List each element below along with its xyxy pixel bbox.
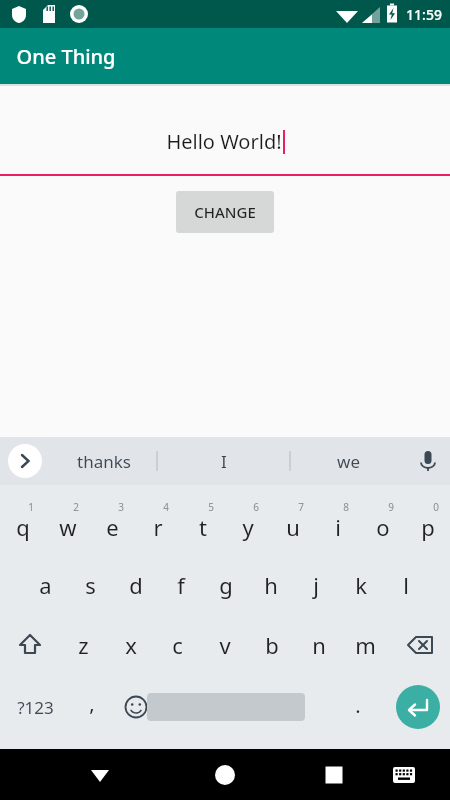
button[interactable]: ?123 [4, 675, 66, 739]
button[interactable]: CHANGE [176, 191, 274, 233]
button[interactable]: p [405, 493, 450, 555]
staticText: l [403, 570, 409, 600]
staticText: 3 [118, 500, 124, 514]
button[interactable]: h [248, 555, 293, 615]
staticText: e [106, 512, 119, 542]
button[interactable]: x [107, 615, 154, 675]
staticText: h [264, 570, 278, 600]
staticText: a [39, 570, 52, 600]
staticText: One Thing [16, 43, 116, 70]
staticText: 9 [388, 500, 394, 514]
staticText: 0 [433, 500, 439, 514]
staticText: x [125, 630, 137, 660]
staticText: 8 [343, 500, 349, 514]
button[interactable]: thanks [50, 437, 157, 485]
staticText: z [78, 630, 89, 660]
button[interactable]: Switch keyboard [384, 755, 424, 795]
staticText: 2 [73, 500, 79, 514]
staticText: k [355, 570, 367, 600]
staticText: q [16, 512, 30, 542]
button[interactable]: l [383, 555, 428, 615]
button[interactable]: b [248, 615, 295, 675]
staticText: w [59, 512, 77, 542]
staticText: d [129, 570, 143, 600]
button[interactable]: Hide keyboard [78, 753, 122, 797]
staticText: n [312, 630, 326, 660]
button[interactable]: s [68, 555, 113, 615]
button[interactable]: I [157, 437, 290, 485]
staticText: c [172, 630, 183, 660]
button[interactable]: a [22, 555, 68, 615]
button[interactable]: , [72, 675, 112, 739]
button[interactable]: r [135, 493, 180, 555]
staticText: CHANGE [194, 202, 256, 222]
staticText: g [219, 570, 233, 600]
button[interactable]: o [360, 493, 405, 555]
button[interactable]: Home [203, 753, 247, 797]
button[interactable]: Hello World! [0, 119, 450, 163]
staticText: , [89, 690, 95, 717]
button[interactable]: z [60, 615, 107, 675]
staticText: I [221, 450, 227, 473]
staticText: y [242, 512, 254, 542]
staticText: j [313, 570, 319, 600]
staticText: ?123 [17, 696, 54, 719]
staticText: b [265, 630, 279, 660]
button[interactable]: q [0, 493, 45, 555]
staticText: o [376, 512, 390, 542]
button[interactable]: Emoji [114, 675, 158, 739]
button[interactable]: Recents [312, 753, 356, 797]
button[interactable]: j [293, 555, 338, 615]
button[interactable]: w [45, 493, 90, 555]
staticText: Hello World! [166, 128, 282, 155]
button[interactable]: Backspace [389, 615, 450, 675]
button[interactable]: Enter [396, 685, 440, 729]
staticText: 7 [298, 500, 304, 514]
staticText: . [355, 692, 361, 719]
button[interactable]: n [295, 615, 342, 675]
button[interactable]: u [270, 493, 315, 555]
staticText: p [421, 512, 435, 542]
button[interactable]: g [203, 555, 248, 615]
button[interactable]: v [201, 615, 248, 675]
staticText: we [337, 450, 360, 473]
staticText: m [355, 630, 376, 660]
staticText: 6 [253, 500, 259, 514]
button[interactable]: k [338, 555, 383, 615]
staticText: u [286, 512, 300, 542]
button[interactable]: e [90, 493, 135, 555]
button[interactable]: Expand suggestions [8, 444, 42, 478]
button[interactable]: . [338, 675, 378, 739]
button[interactable]: i [315, 493, 360, 555]
staticText: 1 [28, 500, 34, 514]
staticText: i [335, 512, 341, 542]
staticText: s [85, 570, 96, 600]
button[interactable]: Shift [0, 615, 60, 675]
staticText: 4 [163, 500, 169, 514]
staticText: t [199, 512, 207, 542]
button[interactable]: t [180, 493, 225, 555]
staticText: v [219, 630, 231, 660]
button[interactable]: y [225, 493, 270, 555]
button[interactable]: m [342, 615, 389, 675]
staticText: f [177, 570, 185, 600]
button[interactable]: c [154, 615, 201, 675]
button[interactable]: f [158, 555, 203, 615]
staticText: thanks [77, 450, 131, 473]
button[interactable]: d [113, 555, 158, 615]
button[interactable]: we [290, 437, 406, 485]
staticText: r [153, 512, 163, 542]
staticText: 5 [208, 500, 214, 514]
button[interactable]: Voice input [406, 437, 450, 485]
staticText: 11:59 [406, 5, 442, 24]
